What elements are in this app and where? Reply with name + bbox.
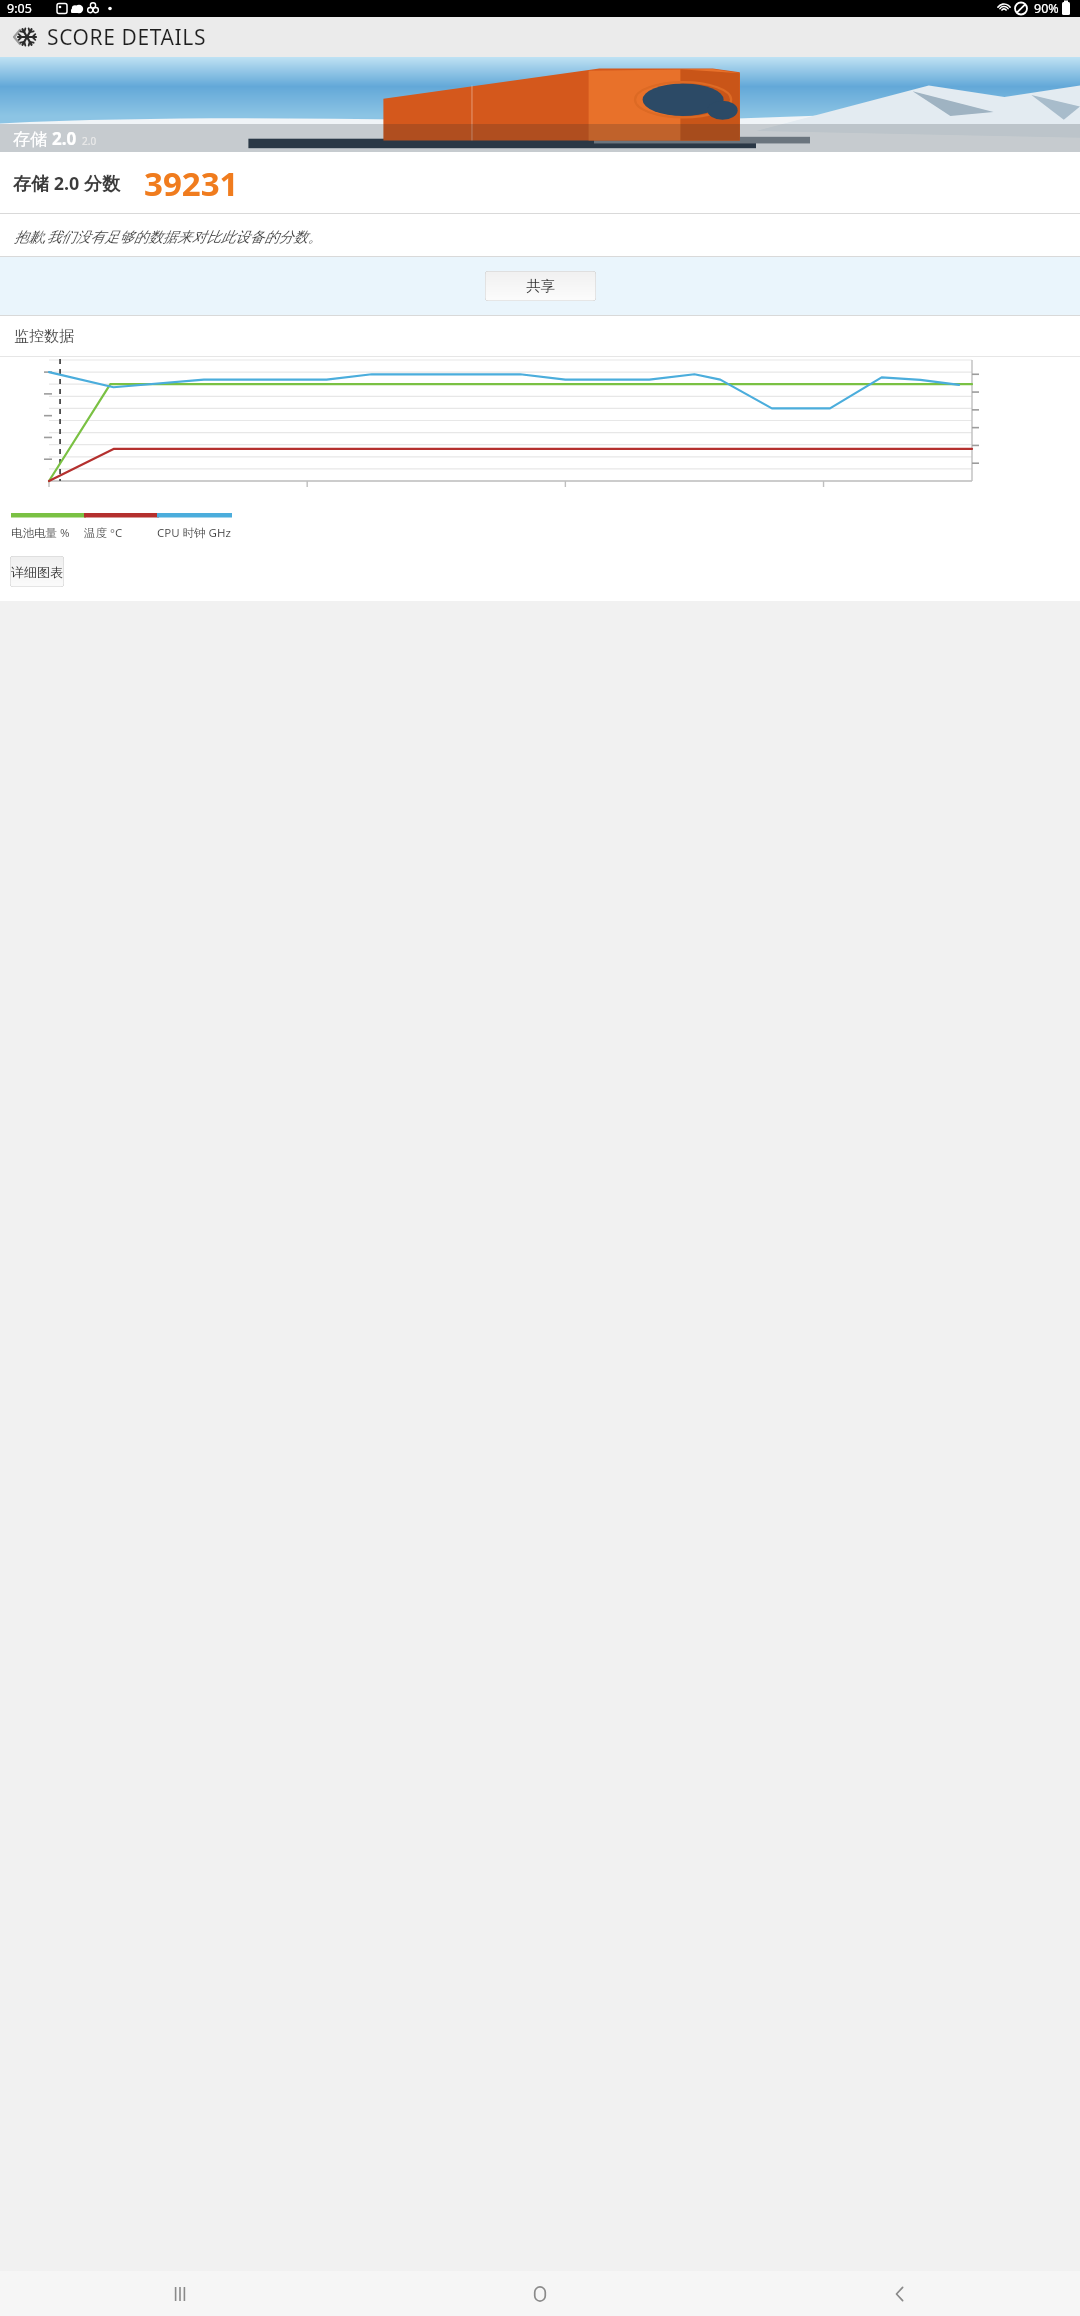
staticText: 2.0 [52,127,77,150]
button[interactable]: Home [360,2271,720,2316]
staticText: 2.0 [82,134,97,148]
button[interactable]: Back [720,2271,1080,2316]
other: Back [5,20,39,54]
staticText: CPU 时钟 GHz [157,525,231,541]
staticText: 温度 °C [84,525,157,541]
staticText: 详细图表 [11,564,63,580]
staticText: 抱歉,我们没有足够的数据来对比此设备的分数。 [14,226,323,246]
staticText: 监控数据 [14,327,74,346]
staticText: 9:05 [7,0,32,17]
staticText: 39231 [144,161,239,206]
staticText: SCORE DETAILS [47,23,207,52]
button[interactable]: Back [0,17,1080,57]
staticText: 存储 2.0 分数 [13,171,121,196]
staticText: 共享 [526,277,555,295]
button[interactable]: Recents [0,2271,360,2316]
staticText: 90% [1034,0,1059,17]
button[interactable]: 共享 [485,271,596,301]
staticText: 存储 [13,127,52,150]
button[interactable]: 详细图表 [10,556,64,587]
staticText: 电池电量 % [11,525,84,541]
